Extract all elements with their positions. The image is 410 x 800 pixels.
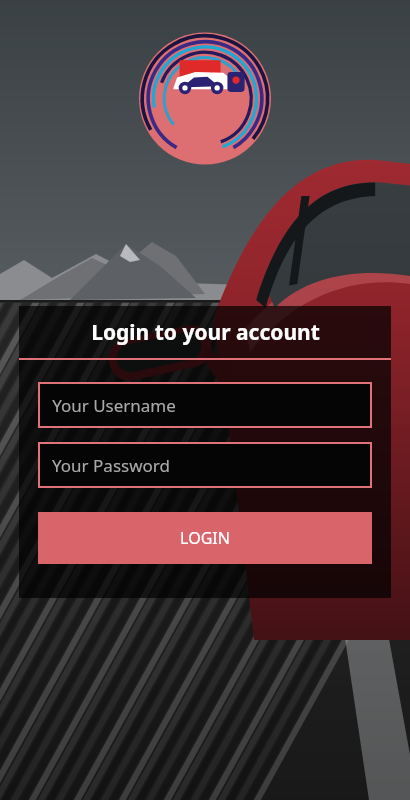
staticText: LOGIN [180, 527, 230, 549]
button[interactable]: Your Password [38, 442, 372, 488]
staticText: Your Username [52, 394, 176, 417]
staticText: Login to your account [91, 318, 320, 347]
staticText: Your Password [52, 454, 170, 477]
button[interactable]: LOGIN [38, 512, 372, 564]
button[interactable]: Your Username [38, 382, 372, 428]
